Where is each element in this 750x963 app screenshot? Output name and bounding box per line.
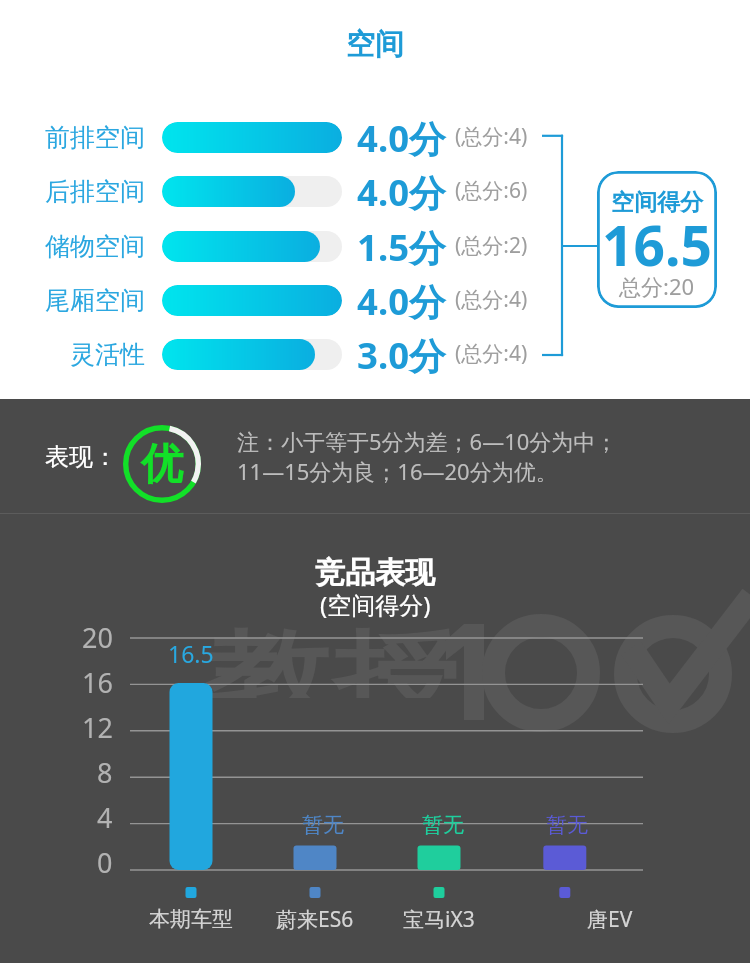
staticText: 11—15分为良；16—20分为优。 [237, 456, 558, 486]
staticText: 暂无 [302, 812, 344, 838]
staticText: 本期车型 [149, 906, 233, 932]
staticText: 教授 [206, 616, 460, 698]
staticText: 储物空间 [45, 231, 145, 262]
other: 评级：优 [121, 423, 203, 505]
staticText: 尾厢空间 [45, 285, 145, 316]
staticText: (总分:4) [455, 122, 528, 151]
staticText: 蔚来ES6 [276, 905, 354, 934]
staticText: 8 [97, 754, 113, 791]
staticText: 4.0分 [357, 167, 446, 217]
staticText: 16.5 [168, 638, 214, 669]
staticText: 竞品表现 [315, 554, 435, 592]
staticText: 1.5分 [357, 222, 446, 272]
staticText: (总分:6) [455, 176, 528, 205]
staticText: 暂无 [422, 812, 464, 838]
staticText: 0 [97, 844, 113, 881]
staticText: 前排空间 [45, 122, 145, 153]
staticText: 总分:20 [619, 271, 695, 301]
staticText: 后排空间 [45, 176, 145, 207]
staticText: 表现： [45, 442, 117, 472]
staticText: 3.0分 [357, 330, 446, 380]
staticText: 注：小于等于5分为差；6—10分为中； [237, 426, 618, 456]
button[interactable]: 空间得分 [597, 171, 717, 308]
staticText: 空间得分 [611, 188, 703, 217]
button[interactable]: 宝马iX3 [369, 904, 509, 934]
staticText: 20 [82, 619, 113, 656]
staticText: 暂无 [546, 812, 588, 838]
staticText: 16 [82, 664, 113, 701]
staticText: 唐EV [587, 905, 633, 934]
button[interactable]: 蔚来ES6 [245, 904, 385, 934]
staticText: 4.0分 [357, 113, 446, 163]
staticText: 空间 [0, 26, 750, 63]
button[interactable]: 本期车型 [121, 904, 261, 934]
staticText: (总分:2) [455, 231, 528, 260]
staticText: 12 [82, 709, 113, 746]
staticText: 4.0分 [357, 276, 446, 326]
staticText: (总分:4) [455, 339, 528, 368]
button[interactable]: 唐EV [540, 904, 680, 934]
staticText: 16.5 [602, 207, 712, 267]
staticText: 优 [141, 438, 183, 491]
staticText: 4 [97, 799, 113, 836]
staticText: (总分:4) [455, 285, 528, 314]
staticText: 灵活性 [70, 339, 145, 370]
staticText: 宝马iX3 [403, 905, 475, 934]
staticText: (空间得分) [320, 588, 431, 620]
